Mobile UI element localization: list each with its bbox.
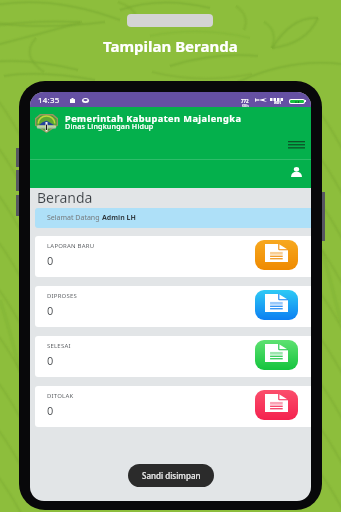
staticText: WIFI [274,101,281,105]
staticText: Pemerintah Kabupaten Majalengka [65,112,242,125]
staticText: Dinas Lingkungan Hidup [65,121,154,131]
staticText: 0 [47,353,54,368]
staticText: KB/s [242,104,249,108]
button[interactable]: Menu [284,137,308,153]
button[interactable]: DIPROSES [35,286,311,327]
staticText: 64 [295,100,300,103]
staticText: 772 [241,98,249,104]
staticText: Admin LH [102,213,136,223]
button[interactable]: DITOLAK [35,386,311,427]
staticText: 0 [47,403,54,418]
button[interactable]: Sandi disimpan [128,464,214,487]
staticText: 0 [47,253,54,268]
staticText: Beranda [37,188,93,207]
staticText: Sandi disimpan [142,470,201,481]
staticText: Tampilan Beranda [103,36,238,56]
button[interactable]: SELESAI [35,336,311,377]
staticText: SELESAI [47,342,71,350]
staticText: DIPROSES [47,292,77,300]
staticText: LAPORAN BARU [47,242,95,250]
staticText: Selamat Datang [47,213,102,223]
staticText: 0 [47,303,54,318]
button[interactable]: Account [288,165,304,179]
staticText: 14:35 [38,95,60,106]
button[interactable]: LAPORAN BARU [35,236,311,277]
staticText: DITOLAK [47,392,74,400]
